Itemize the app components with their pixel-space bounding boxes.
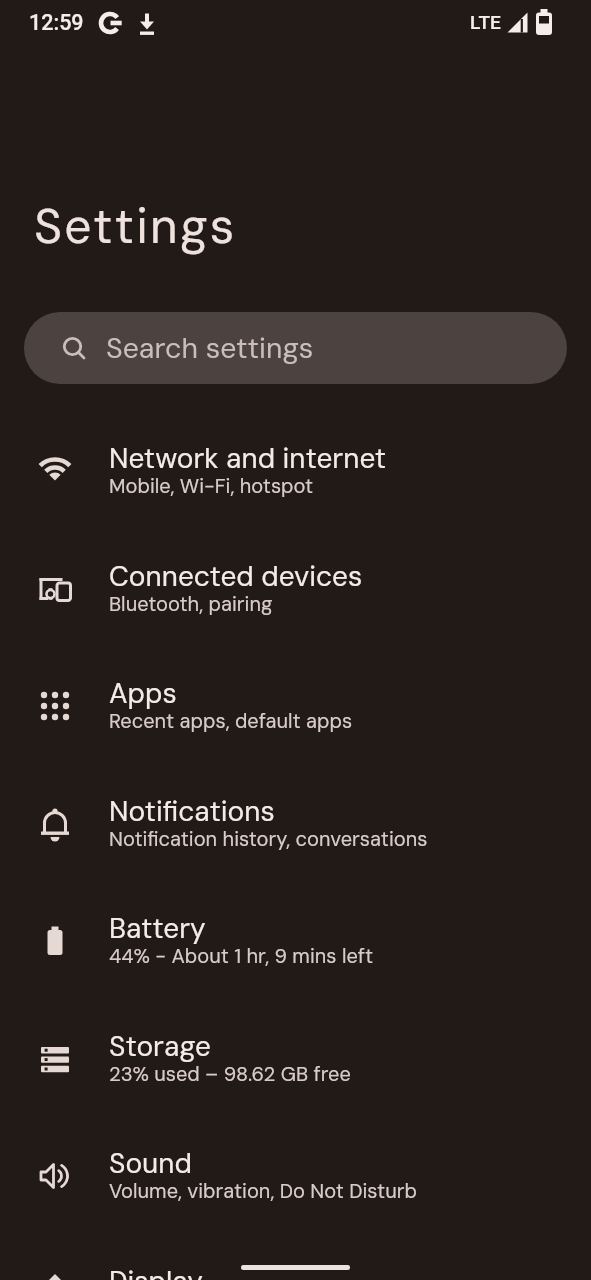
- button[interactable]: Display: [0, 1235, 591, 1280]
- staticText: Mobile, Wi-Fi, hotspot: [109, 473, 314, 499]
- staticText: Notifications: [109, 793, 275, 829]
- staticText: Storage: [109, 1028, 211, 1064]
- button[interactable]: Storage: [0, 1000, 591, 1118]
- button[interactable]: Network and internet: [0, 412, 591, 530]
- staticText: Recent apps, default apps: [109, 708, 353, 734]
- staticText: 12:59: [29, 10, 84, 35]
- button[interactable]: Battery: [0, 882, 591, 1000]
- staticText: Display: [109, 1263, 203, 1280]
- button[interactable]: Sound: [0, 1117, 591, 1235]
- staticText: Search settings: [106, 330, 314, 367]
- staticText: Connected devices: [109, 558, 363, 594]
- staticText: 23% used – 98.62 GB free: [109, 1061, 351, 1087]
- staticText: 44% - About 1 hr, 9 mins left: [109, 943, 374, 969]
- staticText: LTE: [470, 11, 501, 33]
- staticText: Battery: [109, 910, 206, 946]
- button[interactable]: Search settings: [24, 312, 567, 384]
- button[interactable]: Apps: [0, 647, 591, 765]
- button[interactable]: Connected devices: [0, 530, 591, 648]
- button[interactable]: Notifications: [0, 765, 591, 883]
- staticText: Sound: [109, 1145, 192, 1181]
- staticText: Network and internet: [109, 440, 387, 476]
- staticText: Bluetooth, pairing: [109, 591, 273, 617]
- staticText: Volume, vibration, Do Not Disturb: [109, 1178, 417, 1204]
- staticText: Notification history, conversations: [109, 826, 428, 852]
- staticText: Settings: [34, 195, 237, 257]
- staticText: Apps: [109, 675, 177, 711]
